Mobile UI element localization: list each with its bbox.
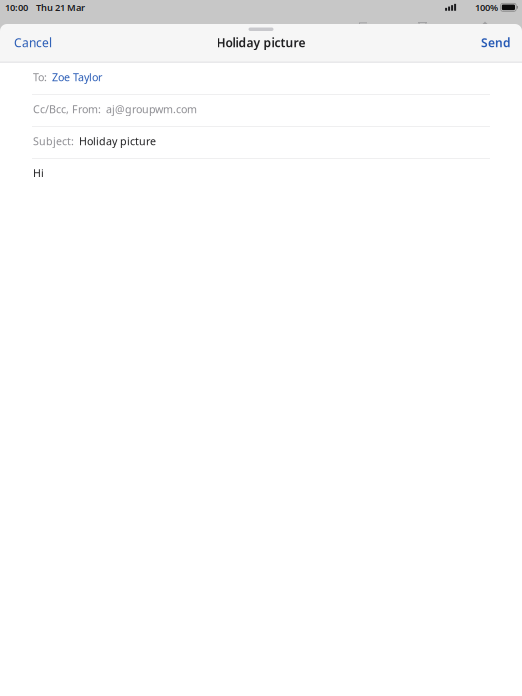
staticText: Holiday picture [79,134,156,148]
button[interactable]: Cc/Bcc, From: [0,95,522,126]
button[interactable]: Cancel [0,29,66,55]
staticText: To: [33,70,47,84]
staticText: Hi [33,166,44,180]
staticText: Zoe Taylor [52,70,102,84]
staticText: 10:00 [5,1,28,13]
staticText: Cancel [14,34,52,50]
button[interactable]: To: [0,63,522,94]
staticText: 100% [475,1,498,13]
staticText: Subject: [33,134,74,148]
button[interactable]: Subject: [0,127,522,158]
staticText: Send [481,34,511,50]
staticText: Thu 21 Mar [36,1,85,13]
staticText: aj@groupwm.com [106,102,197,116]
button[interactable]: Send [468,29,522,55]
staticText: Cc/Bcc, From: [33,102,101,116]
staticText: Holiday picture [216,34,305,50]
